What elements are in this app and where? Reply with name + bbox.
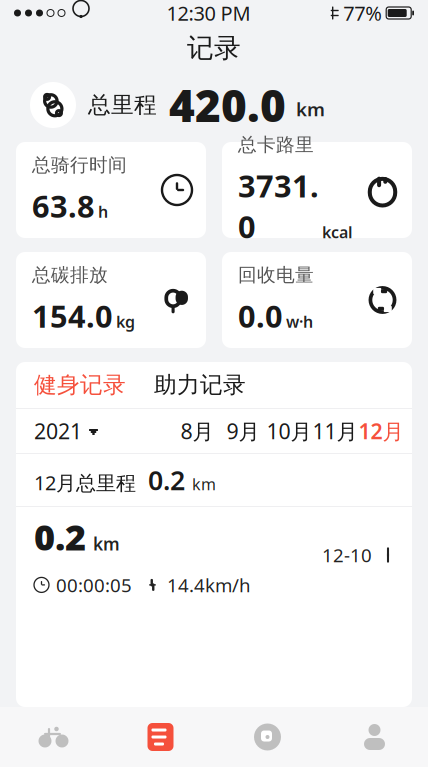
- button[interactable]: 8月: [174, 411, 220, 451]
- staticText: 14.4km/h: [167, 572, 251, 597]
- button[interactable]: 12月: [358, 411, 404, 451]
- staticText: 2021: [34, 417, 82, 445]
- staticText: km: [296, 97, 325, 121]
- button[interactable]: 0.2: [16, 507, 412, 603]
- staticText: 0.2: [34, 513, 86, 560]
- button[interactable]: 2021: [16, 409, 98, 453]
- button[interactable]: 总卡路里: [222, 142, 412, 238]
- button[interactable]: 助力记录: [154, 371, 246, 399]
- button[interactable]: 我的: [321, 722, 428, 752]
- staticText: 回收电量: [238, 264, 314, 287]
- button[interactable]: 健身记录: [34, 371, 126, 399]
- staticText: 总卡路里: [238, 133, 314, 156]
- button[interactable]: 骑行: [0, 722, 107, 752]
- staticText: 0.0: [238, 296, 283, 336]
- staticText: 77%: [343, 0, 382, 26]
- button[interactable]: 9月: [220, 411, 266, 451]
- button[interactable]: 总碳排放: [16, 252, 206, 348]
- staticText: 9月: [226, 417, 259, 445]
- staticText: kg: [116, 311, 135, 332]
- staticText: 健身记录: [34, 371, 126, 399]
- button[interactable]: 记录: [107, 722, 214, 752]
- staticText: 12月: [358, 417, 403, 445]
- staticText: kcal: [322, 221, 353, 243]
- staticText: 11月: [312, 417, 357, 445]
- staticText: 记录: [187, 32, 241, 64]
- staticText: km: [192, 473, 216, 495]
- staticText: w·h: [286, 311, 313, 332]
- button[interactable]: 回收电量: [222, 252, 412, 348]
- staticText: 8月: [180, 417, 213, 445]
- staticText: 12:30 PM: [167, 0, 251, 26]
- staticText: 420.0: [169, 76, 286, 134]
- staticText: 总碳排放: [32, 264, 108, 287]
- button[interactable]: 总骑行时间: [16, 142, 206, 238]
- staticText: 0.2: [148, 462, 185, 498]
- staticText: 总骑行时间: [32, 154, 127, 177]
- staticText: 助力记录: [154, 371, 246, 399]
- staticText: 12-10: [322, 543, 372, 567]
- staticText: 63.8: [32, 186, 95, 226]
- staticText: 154.0: [32, 296, 113, 336]
- button[interactable]: 10月: [266, 411, 312, 451]
- staticText: 3731.0: [238, 165, 319, 247]
- staticText: km: [93, 532, 120, 555]
- staticText: 00:00:05: [56, 572, 132, 597]
- staticText: 10月: [266, 417, 311, 445]
- staticText: 12月总里程: [34, 469, 136, 496]
- staticText: h: [98, 201, 108, 222]
- button[interactable]: 11月: [312, 411, 358, 451]
- staticText: 总里程: [88, 91, 157, 119]
- button[interactable]: 发现: [214, 722, 321, 752]
